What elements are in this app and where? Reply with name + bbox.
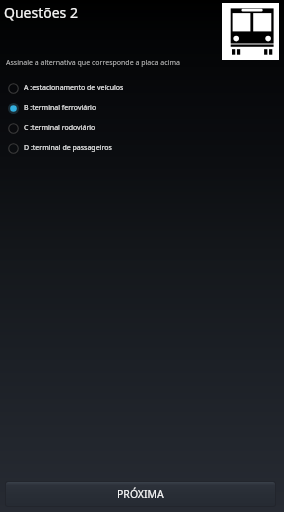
button[interactable]: PRÓXIMA [6, 482, 275, 506]
button[interactable]: C :terminal rodoviário [0, 118, 284, 138]
button[interactable]: A :estacionamento de veículos [0, 78, 284, 98]
staticText: B :terminal ferroviário [24, 103, 97, 113]
button[interactable]: B :terminal ferroviário [0, 98, 284, 118]
staticText: C :terminal rodoviário [24, 123, 96, 133]
staticText: Questões 2 [4, 3, 78, 22]
button[interactable]: D :terminal de passageiros [0, 138, 284, 158]
staticText: D :terminal de passageiros [24, 143, 112, 153]
staticText: A :estacionamento de veículos [24, 83, 124, 93]
staticText: Assinale a alternativa que corresponde a… [6, 58, 180, 68]
staticText: PRÓXIMA [117, 487, 164, 501]
